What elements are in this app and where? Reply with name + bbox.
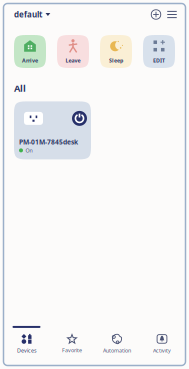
button[interactable]: default <box>14 4 50 24</box>
staticText: Arrive <box>22 57 38 64</box>
staticText: Activity <box>153 347 171 354</box>
staticText: default <box>14 9 42 20</box>
staticText: Sleep <box>109 57 123 64</box>
button[interactable]: PM-01M-7845desk <box>14 101 91 159</box>
button[interactable]: Automation <box>94 334 139 354</box>
button[interactable]: Activity <box>139 334 184 354</box>
staticText: Leave <box>65 57 80 64</box>
button[interactable]: Sleep <box>100 35 132 68</box>
button[interactable]: Devices <box>4 334 49 354</box>
staticText: Favorite <box>62 347 82 354</box>
button[interactable]: Leave <box>57 35 89 68</box>
button[interactable]: Menu <box>164 4 180 24</box>
button[interactable]: Add <box>148 4 164 24</box>
button[interactable]: EDIT <box>143 35 175 68</box>
button[interactable]: Favorite <box>49 334 94 354</box>
staticText: EDIT <box>153 57 165 64</box>
staticText: Automation <box>103 347 131 354</box>
staticText: On <box>25 147 32 154</box>
staticText: PM-01M-7845desk <box>19 137 78 146</box>
staticText: Devices <box>17 347 37 354</box>
staticText: All <box>14 82 26 94</box>
button[interactable]: Arrive <box>14 35 46 68</box>
